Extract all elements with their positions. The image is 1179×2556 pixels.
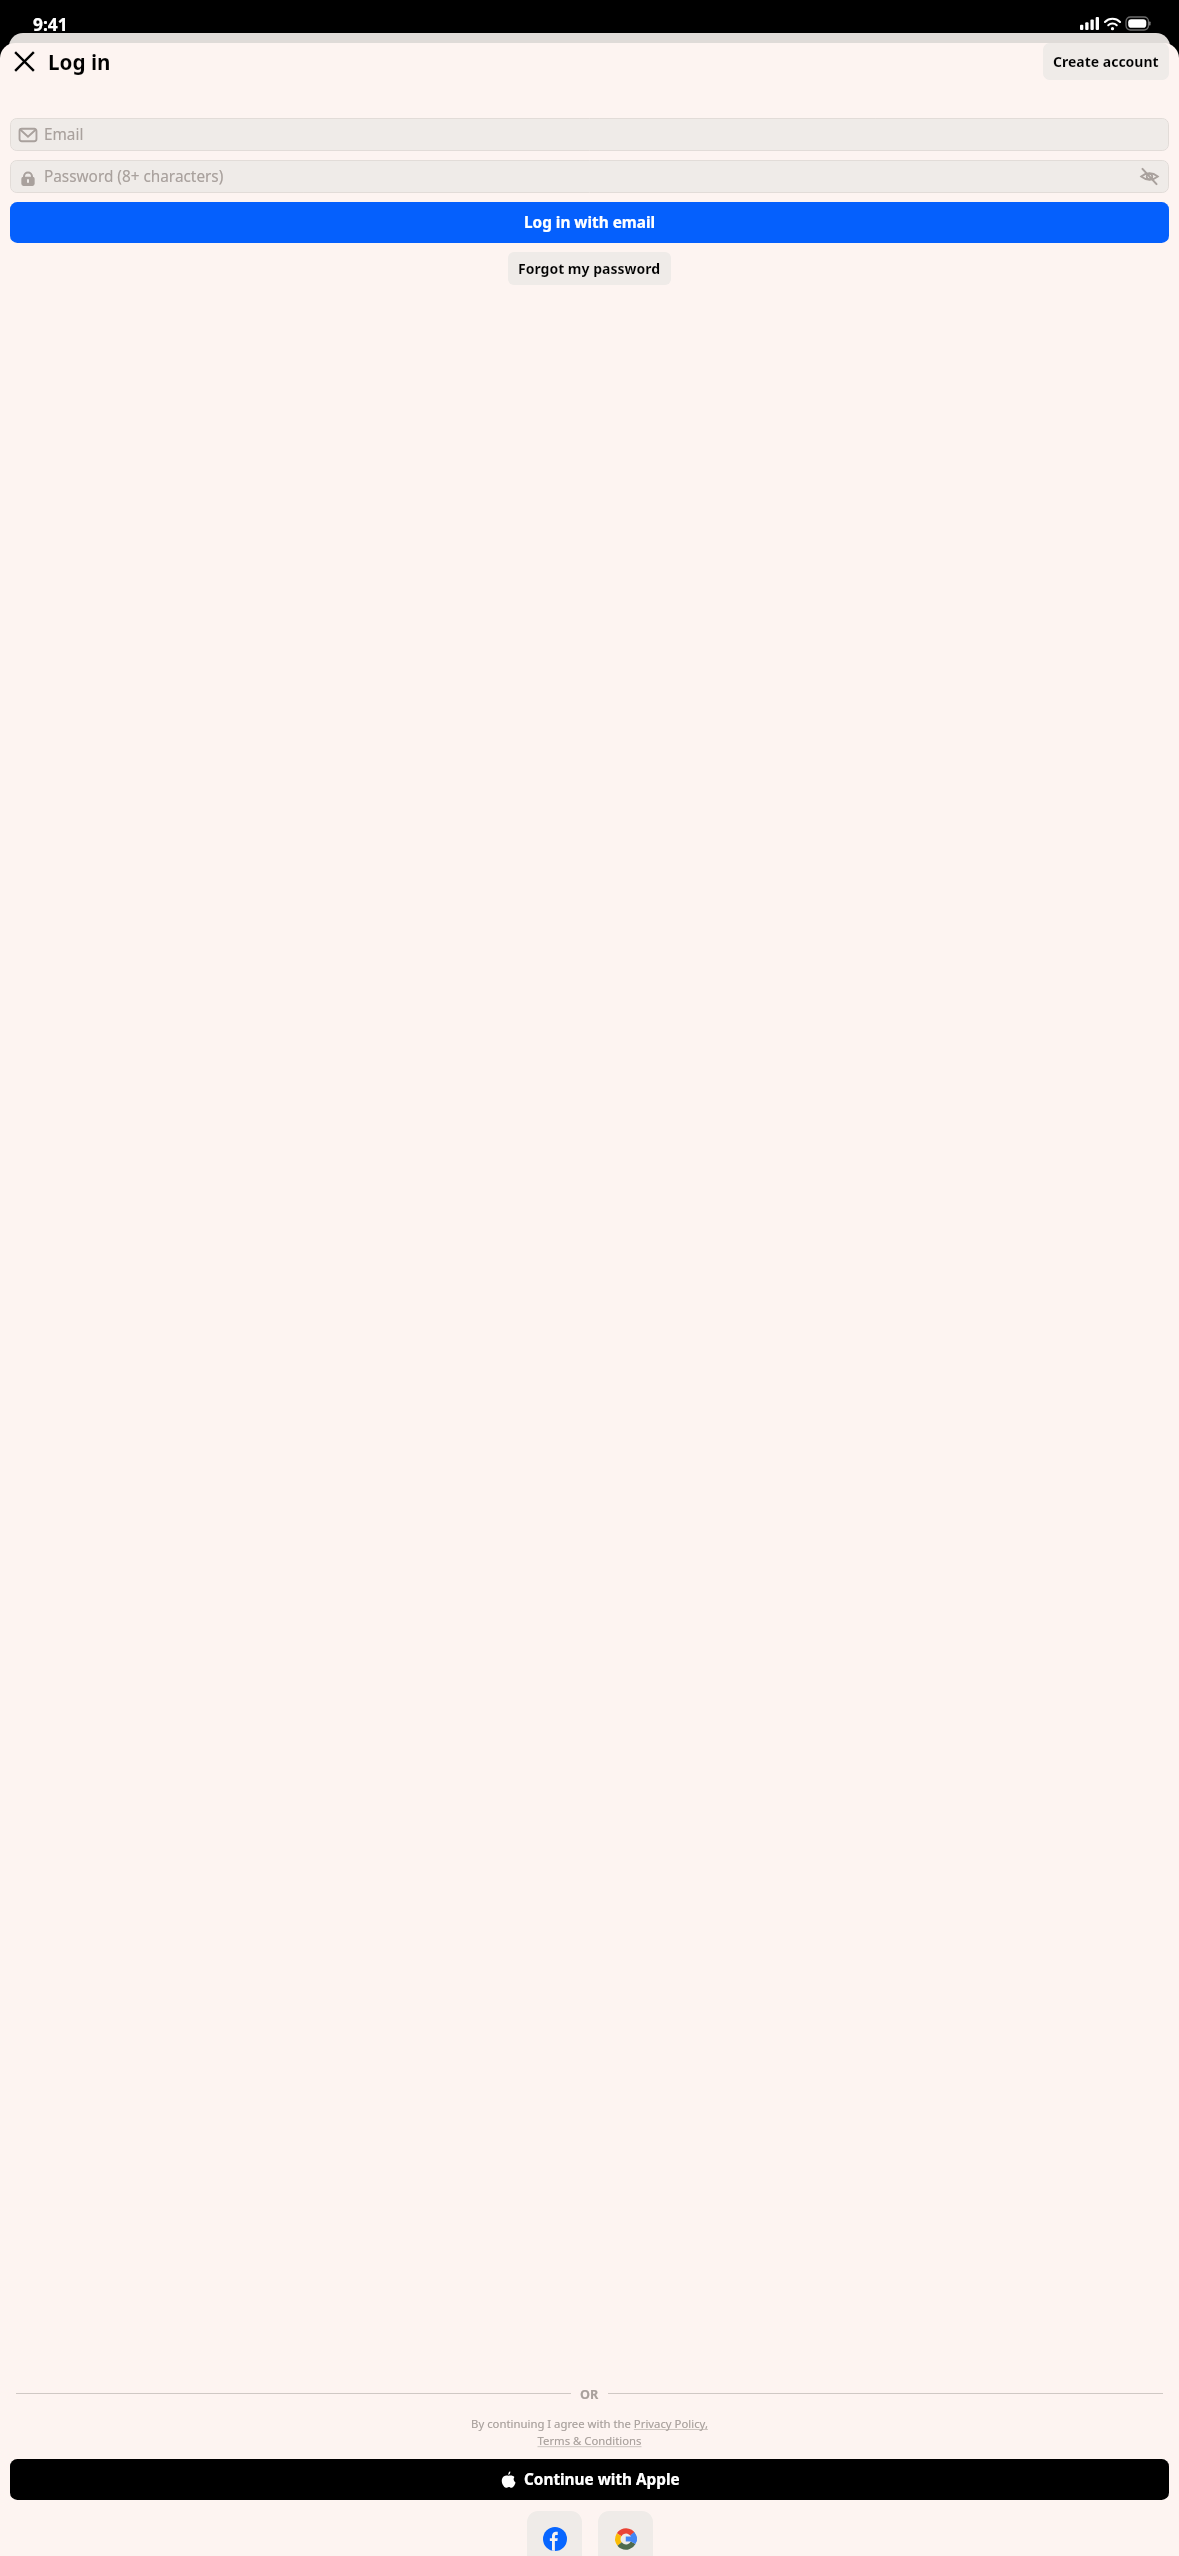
button[interactable]: Password (8+ characters) bbox=[10, 160, 1169, 193]
button[interactable]: Email bbox=[10, 118, 1169, 151]
staticText: Forgot my password bbox=[518, 259, 661, 278]
staticText: Log in with email bbox=[524, 212, 656, 233]
staticText: Email bbox=[44, 124, 84, 145]
button[interactable]: Forgot my password bbox=[508, 252, 671, 285]
button[interactable]: Close bbox=[10, 47, 39, 76]
staticText: Continue with Apple bbox=[524, 2469, 680, 2490]
staticText: OR bbox=[580, 2385, 599, 2402]
staticText: Password (8+ characters) bbox=[44, 166, 224, 187]
button[interactable]: Continue with Facebook bbox=[527, 2511, 582, 2556]
staticText: Create account bbox=[1053, 52, 1159, 71]
button[interactable]: Continue with Apple bbox=[10, 2459, 1169, 2500]
button[interactable]: Log in with email bbox=[10, 202, 1169, 243]
button[interactable]: Show password bbox=[1139, 166, 1160, 187]
button[interactable]: Continue with Google bbox=[598, 2511, 653, 2556]
staticText: Log in bbox=[48, 48, 111, 76]
staticText: 9:41 bbox=[33, 12, 68, 36]
button[interactable]: Create account bbox=[1043, 43, 1169, 80]
button[interactable]: By continuing I agree with the Privacy P… bbox=[40, 2416, 1139, 2449]
